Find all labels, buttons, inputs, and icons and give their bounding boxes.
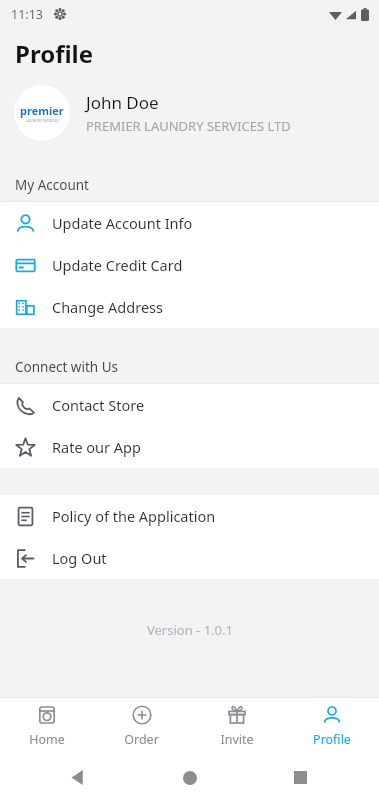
staticText: Update Credit Card: [52, 255, 183, 275]
button[interactable]: Update Credit Card: [0, 244, 379, 286]
staticText: My Account: [15, 176, 89, 194]
button[interactable]: Invite: [189, 698, 284, 755]
staticText: Invite: [220, 731, 254, 748]
staticText: Connect with Us: [15, 358, 119, 376]
staticText: LAUNDRY SERVICES: [26, 118, 59, 123]
staticText: Rate our App: [52, 437, 141, 457]
button[interactable]: Policy of the Application: [0, 495, 379, 537]
staticText: PREMIER LAUNDRY SERVICES LTD: [86, 117, 291, 135]
staticText: premier: [20, 103, 64, 118]
button[interactable]: Contact Store: [0, 384, 379, 426]
staticText: Profile: [313, 731, 351, 748]
staticText: John Doe: [86, 91, 159, 114]
button[interactable]: Log Out: [0, 537, 379, 579]
other: Back: [70, 770, 85, 785]
staticText: Update Account Info: [52, 213, 193, 233]
staticText: Log Out: [52, 548, 107, 568]
button[interactable]: Rate our App: [0, 426, 379, 468]
staticText: Contact Store: [52, 395, 145, 415]
button[interactable]: premier: [0, 78, 379, 148]
staticText: Policy of the Application: [52, 506, 216, 526]
other: Home: [183, 771, 197, 785]
staticText: Version - 1.0.1: [147, 621, 233, 639]
button[interactable]: Profile: [284, 698, 379, 755]
button[interactable]: Order: [94, 698, 189, 755]
staticText: Home: [29, 731, 65, 748]
staticText: 11:13: [11, 6, 43, 23]
button[interactable]: Update Account Info: [0, 202, 379, 244]
staticText: Profile: [15, 37, 94, 70]
staticText: Order: [124, 731, 159, 748]
button[interactable]: Change Address: [0, 286, 379, 328]
button[interactable]: Home: [0, 698, 94, 755]
staticText: Change Address: [52, 297, 163, 317]
